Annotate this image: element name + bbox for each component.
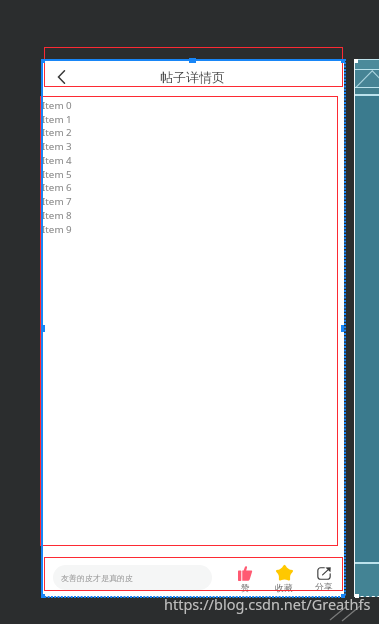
button[interactable]: Item 6 <box>41 180 344 194</box>
button[interactable]: 收藏 <box>267 565 301 594</box>
staticText: Item 2 <box>42 126 72 139</box>
staticText: Item 9 <box>42 223 72 236</box>
button[interactable]: Item 5 <box>41 167 344 181</box>
button[interactable]: Item 7 <box>41 194 344 208</box>
button[interactable]: 友善的皮才是真的皮 <box>53 565 212 590</box>
staticText: Item 1 <box>42 113 72 126</box>
staticText: 帖子详情页 <box>81 69 304 85</box>
staticText: Item 4 <box>42 154 72 167</box>
staticText: Item 5 <box>42 168 72 181</box>
staticText: 分享 <box>315 582 333 593</box>
button[interactable]: Item 1 <box>41 112 344 126</box>
button[interactable]: Item 9 <box>41 222 344 236</box>
button[interactable]: Back <box>41 59 81 95</box>
staticText: 收藏 <box>275 583 293 594</box>
staticText: 友善的皮才是真的皮 <box>61 573 133 583</box>
button[interactable]: Item 4 <box>41 153 344 167</box>
button[interactable]: 分享 <box>307 567 341 593</box>
staticText: https://blog.csdn.net/Greathfs <box>164 594 371 614</box>
staticText: Item 6 <box>42 181 72 194</box>
button[interactable]: Item 0 <box>41 98 344 112</box>
staticText: Item 7 <box>42 195 72 208</box>
staticText: Item 0 <box>42 99 72 112</box>
staticText: 赞 <box>241 583 250 594</box>
button[interactable]: Item 2 <box>41 125 344 139</box>
staticText: Item 3 <box>42 140 72 153</box>
button[interactable]: Item 8 <box>41 208 344 222</box>
staticText: Item 8 <box>42 209 72 222</box>
button[interactable]: Back <box>41 59 344 95</box>
button[interactable]: 赞 <box>228 566 262 594</box>
button[interactable]: Item 3 <box>41 139 344 153</box>
